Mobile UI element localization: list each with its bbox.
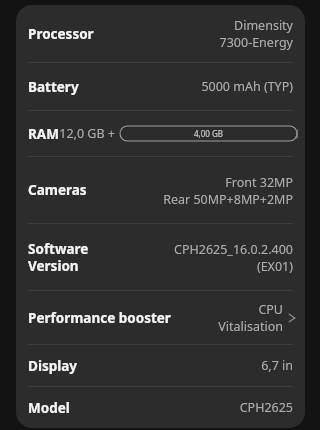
staticText: Display	[28, 357, 78, 375]
staticText: Model	[28, 399, 70, 417]
button[interactable]: Software Version	[16, 224, 305, 290]
staticText: Battery	[28, 78, 79, 96]
staticText: Software Version	[28, 240, 89, 275]
staticText: 12,0 GB +	[59, 125, 115, 142]
staticText: RAM	[28, 125, 59, 143]
staticText: CPU Vitalisation	[218, 301, 283, 334]
staticText: Front 32MP Rear 50MP+8MP+2MP	[163, 174, 293, 207]
staticText: CPH2625_16.0.2.400 (EX01)	[174, 241, 293, 274]
button[interactable]: Performance booster	[16, 291, 305, 344]
staticText: Processor	[28, 25, 94, 43]
staticText: 5000 mAh (TYP)	[201, 78, 293, 95]
button[interactable]: Battery	[16, 63, 305, 110]
staticText: Cameras	[28, 181, 87, 199]
staticText: 6,7 in	[261, 357, 293, 374]
staticText: 4,00 GB	[194, 128, 223, 139]
staticText: Dimensity 7300-Energy	[219, 17, 293, 50]
staticText: CPH2625	[239, 399, 293, 416]
button[interactable]: RAM	[16, 111, 305, 156]
other: Performance booster details	[287, 309, 297, 327]
button[interactable]: Display	[16, 345, 305, 386]
button[interactable]: Model	[16, 387, 305, 428]
button[interactable]: Processor	[16, 5, 305, 62]
staticText: Performance booster	[28, 309, 171, 327]
button[interactable]: Cameras	[16, 157, 305, 223]
